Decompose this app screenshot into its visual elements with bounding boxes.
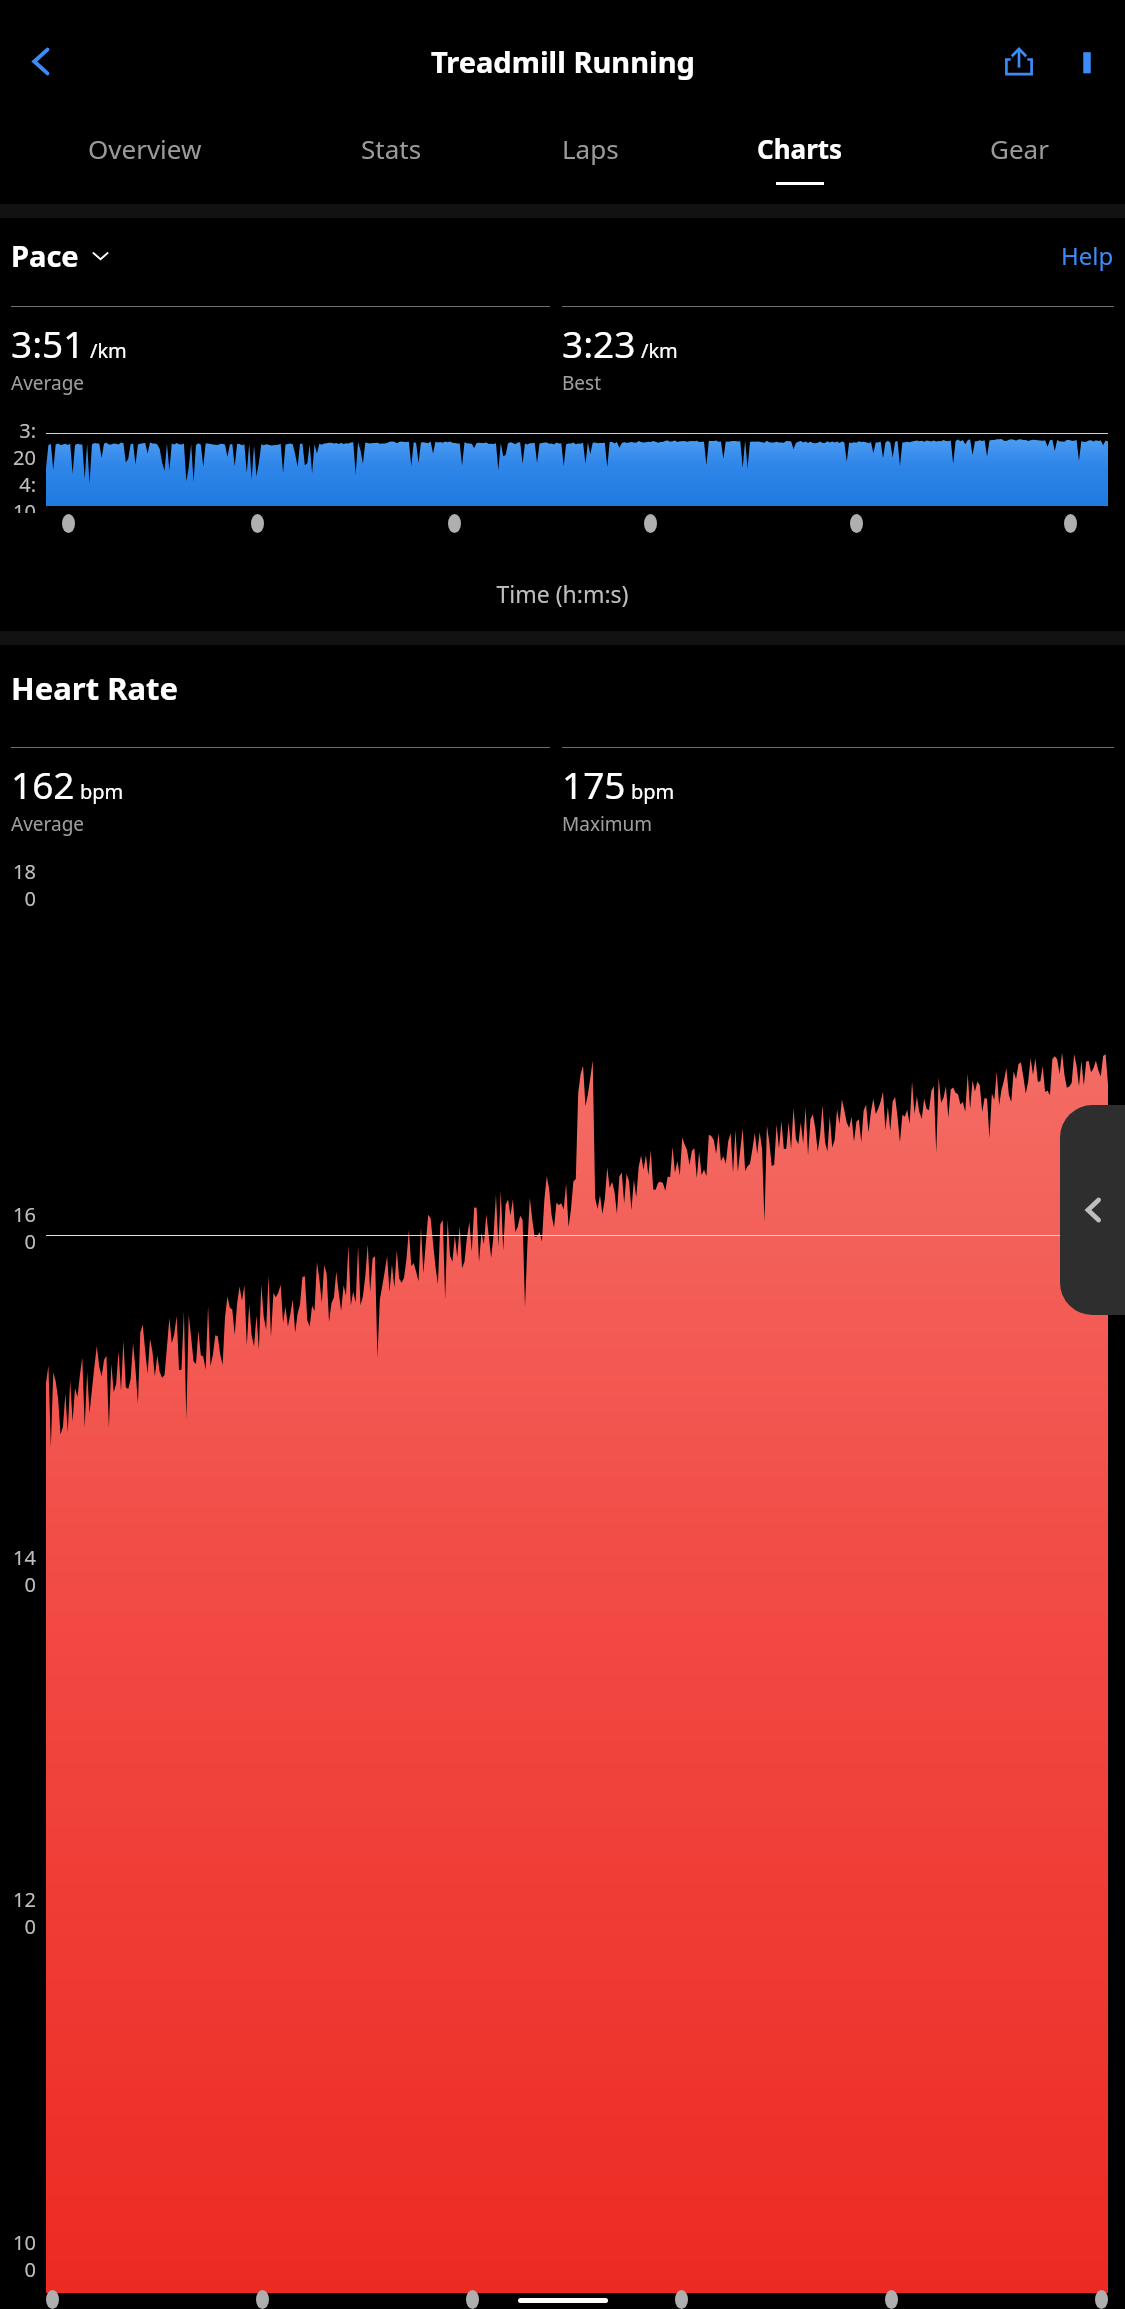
- staticText: 100: [8, 2229, 36, 2283]
- staticText: Best: [562, 370, 602, 396]
- staticText: Time (h:m:s): [0, 578, 1125, 609]
- staticText: 3:23: [562, 318, 636, 368]
- staticText: Charts: [757, 131, 843, 166]
- staticText: /km: [90, 337, 127, 364]
- staticText: bpm: [631, 778, 675, 805]
- button[interactable]: Overview: [0, 122, 290, 204]
- staticText: Heart Rate: [11, 667, 179, 709]
- button[interactable]: More options: [1053, 27, 1121, 95]
- staticText: 180: [8, 858, 36, 912]
- staticText: Gear: [990, 131, 1049, 166]
- staticText: 3:20: [8, 417, 36, 471]
- staticText: bpm: [80, 778, 124, 805]
- staticText: Pace: [11, 236, 79, 275]
- button[interactable]: Help: [1061, 239, 1114, 272]
- button[interactable]: Pace: [11, 236, 111, 275]
- button[interactable]: Back: [6, 26, 76, 96]
- staticText: Maximum: [562, 811, 653, 837]
- staticText: Stats: [361, 131, 422, 166]
- staticText: 120: [8, 1886, 36, 1940]
- staticText: /km: [641, 337, 678, 364]
- button[interactable]: Share: [985, 27, 1053, 95]
- staticText: 3:51: [11, 318, 85, 368]
- staticText: 140: [8, 1544, 36, 1598]
- button[interactable]: Gear: [913, 122, 1125, 204]
- staticText: Help: [1061, 239, 1114, 272]
- staticText: 162: [11, 759, 75, 809]
- staticText: 160: [8, 1201, 36, 1255]
- staticText: Average: [11, 811, 85, 837]
- button[interactable]: Open side panel: [1060, 1105, 1125, 1315]
- button[interactable]: Charts: [687, 122, 913, 204]
- staticText: 175: [562, 759, 626, 809]
- staticText: 4:10: [8, 471, 36, 513]
- staticText: Average: [11, 370, 85, 396]
- button[interactable]: Laps: [493, 122, 687, 204]
- staticText: Overview: [88, 131, 202, 166]
- button[interactable]: Stats: [290, 122, 493, 204]
- staticText: Laps: [562, 131, 619, 166]
- staticText: Treadmill Running: [431, 42, 695, 81]
